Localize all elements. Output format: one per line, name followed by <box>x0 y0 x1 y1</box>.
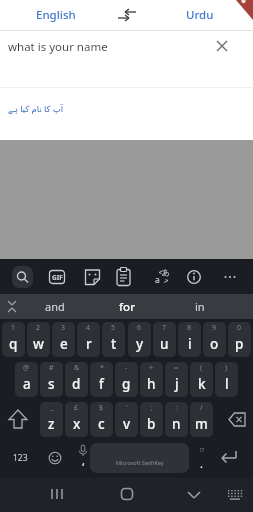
staticText: 8 <box>187 323 192 333</box>
button[interactable]: 0 <box>228 322 251 357</box>
button[interactable]: & <box>65 362 88 397</box>
staticText: !? <box>200 446 205 454</box>
staticText: b <box>147 415 156 433</box>
staticText: & <box>74 363 80 373</box>
button[interactable]: _ <box>40 402 63 437</box>
staticText: p <box>235 335 244 353</box>
button[interactable] <box>206 30 238 62</box>
staticText: v <box>123 415 131 433</box>
staticText: _ <box>50 403 54 413</box>
button[interactable]: and <box>25 294 85 319</box>
button[interactable]: 123 <box>3 443 37 473</box>
staticText: Urdu <box>186 7 214 23</box>
button[interactable]: $ <box>90 402 113 437</box>
staticText: : <box>176 403 178 413</box>
button[interactable]: 8 <box>178 322 201 357</box>
staticText: GIF <box>52 273 63 282</box>
staticText: あ <box>162 268 170 277</box>
staticText: k <box>198 375 206 393</box>
staticText: x <box>73 415 81 433</box>
button[interactable] <box>223 482 247 508</box>
staticText: w <box>33 335 44 353</box>
staticText: d <box>72 375 81 393</box>
button[interactable]: + <box>140 362 163 397</box>
button[interactable] <box>0 31 253 87</box>
staticText: 6 <box>137 323 142 333</box>
staticText: £ <box>74 403 79 413</box>
button[interactable]: 4 <box>77 322 100 357</box>
button[interactable]: in <box>170 294 230 319</box>
button[interactable] <box>182 482 206 508</box>
staticText: * <box>100 363 104 373</box>
staticText: z <box>48 415 55 433</box>
staticText: in <box>195 299 205 314</box>
staticText: what is your name <box>8 39 108 55</box>
button[interactable] <box>219 402 253 437</box>
staticText: 0 <box>237 323 242 333</box>
button[interactable]: 7 <box>153 322 176 357</box>
button[interactable]: Urdu <box>172 4 228 26</box>
button[interactable]: Microsoft SwiftKey <box>90 443 189 473</box>
staticText: 5 <box>111 323 116 333</box>
button[interactable]: . <box>193 456 209 470</box>
button[interactable]: ; <box>140 402 163 437</box>
staticText: 1 <box>11 323 16 333</box>
button[interactable] <box>41 443 69 473</box>
button[interactable]: £ <box>65 402 88 437</box>
staticText: Microsoft SwiftKey <box>116 459 164 466</box>
button[interactable]: 5 <box>102 322 125 357</box>
staticText: 123 <box>13 452 28 464</box>
button[interactable]: 9 <box>203 322 226 357</box>
staticText: l <box>225 375 229 393</box>
button[interactable] <box>41 261 73 293</box>
button[interactable] <box>214 261 246 293</box>
button[interactable]: * <box>90 362 113 397</box>
button[interactable]: : <box>165 402 188 437</box>
button[interactable] <box>77 261 109 293</box>
staticText: h <box>147 375 156 393</box>
button[interactable]: ( <box>190 362 213 397</box>
staticText: , <box>82 453 85 468</box>
staticText: @ <box>23 363 30 373</box>
staticText: English <box>36 7 76 23</box>
staticText: for <box>119 299 135 315</box>
staticText: ( <box>200 363 203 373</box>
staticText: ) <box>225 363 228 373</box>
staticText: a <box>23 375 31 393</box>
staticText: f <box>99 375 104 393</box>
button[interactable]: ' <box>115 402 138 437</box>
staticText: c <box>98 415 105 433</box>
button[interactable] <box>108 261 140 293</box>
button[interactable]: 6 <box>128 322 151 357</box>
button[interactable]: - <box>115 362 138 397</box>
button[interactable]: English <box>21 4 91 26</box>
button[interactable] <box>178 261 210 293</box>
button[interactable] <box>146 261 178 293</box>
button[interactable]: 3 <box>52 322 75 357</box>
button[interactable] <box>2 402 34 437</box>
button[interactable] <box>214 443 244 473</box>
button[interactable] <box>72 443 92 473</box>
button[interactable] <box>45 482 69 508</box>
button[interactable]: ) <box>215 362 238 397</box>
button[interactable] <box>4 297 20 316</box>
button[interactable]: / <box>190 402 213 437</box>
staticText: u <box>160 335 169 353</box>
staticText: 9 <box>212 323 217 333</box>
staticText: 2 <box>36 323 41 333</box>
button[interactable] <box>110 3 144 27</box>
staticText: 3 <box>61 323 66 333</box>
button[interactable]: 2 <box>27 322 50 357</box>
button[interactable] <box>115 482 139 508</box>
button[interactable]: for <box>97 294 157 319</box>
staticText: o <box>210 335 219 353</box>
staticText: / <box>200 403 203 413</box>
button[interactable]: @ <box>15 362 38 397</box>
button[interactable]: , <box>76 452 90 468</box>
button[interactable] <box>12 266 33 288</box>
button[interactable]: 1 <box>2 322 25 357</box>
button[interactable]: = <box>165 362 188 397</box>
button[interactable]: # <box>40 362 63 397</box>
button[interactable]: آپ کا نام کیا ہے <box>8 103 64 115</box>
staticText: # <box>49 363 54 373</box>
